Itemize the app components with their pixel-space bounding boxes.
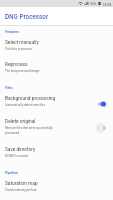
button[interactable]: Select manually xyxy=(0,38,113,60)
button[interactable]: Save directory xyxy=(0,145,113,167)
staticText: DNG Processor xyxy=(5,13,49,20)
staticText: Remove files that were successfully proc… xyxy=(5,126,59,135)
staticText: Pick files to process xyxy=(5,47,32,51)
staticText: The last processed image xyxy=(5,69,40,73)
staticText: 56% xyxy=(90,2,97,6)
staticText: 13:33 xyxy=(102,2,112,6)
staticText: Save directory xyxy=(5,147,36,153)
button[interactable]: Delete original xyxy=(0,117,113,145)
button[interactable]: Saturation map xyxy=(0,179,113,200)
button[interactable]: Background processing xyxy=(0,94,113,117)
staticText: Background processing xyxy=(5,96,56,102)
button[interactable]: Switch off xyxy=(94,121,110,135)
staticText: Automatically detect new files xyxy=(5,103,45,107)
staticText: Files xyxy=(5,86,13,90)
button[interactable]: Reprocess xyxy=(0,60,113,82)
staticText: Select manually xyxy=(5,40,39,46)
staticText: Delete original xyxy=(5,119,36,125)
button[interactable]: Switch on xyxy=(94,97,110,111)
staticText: Saturation map xyxy=(5,181,38,187)
staticText: Tweak intensity per hue xyxy=(5,188,37,192)
staticText: Reprocess xyxy=(5,62,28,68)
staticText: DCIM/Processed xyxy=(5,154,28,158)
staticText: Pipeline xyxy=(5,171,18,175)
staticText: Features xyxy=(5,30,20,34)
